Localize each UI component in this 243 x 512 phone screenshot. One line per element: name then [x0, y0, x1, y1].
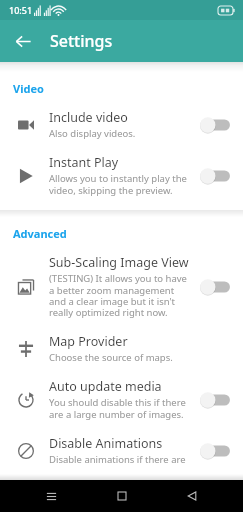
staticText: Auto update media — [49, 378, 162, 395]
button[interactable]: Toggle — [199, 165, 233, 187]
button[interactable]: Recents — [31, 480, 71, 512]
button[interactable]: Toggle — [199, 114, 233, 136]
staticText: You should disable this if there are a l… — [49, 396, 193, 421]
staticText: Sub-Scaling Image View — [49, 254, 189, 271]
staticText: Map Provider — [49, 333, 128, 350]
button[interactable]: Sub-Scaling Image View — [0, 247, 243, 326]
button[interactable]: Toggle — [199, 440, 233, 462]
button[interactable]: Home — [102, 480, 142, 512]
staticText: Also display videos. — [49, 127, 136, 140]
staticText: (TESTING) It allows you to have a better… — [49, 272, 193, 319]
staticText: Choose the source of maps. — [49, 351, 173, 364]
staticText: Allows you to instantly play the video, … — [49, 172, 193, 197]
staticText: Disable animations if there are performa… — [49, 453, 193, 467]
button[interactable]: Back — [172, 480, 212, 512]
button[interactable]: Instant Play — [0, 147, 243, 204]
button[interactable]: Auto update media — [0, 371, 243, 428]
staticText: Include video — [49, 109, 128, 126]
button[interactable]: Map Provider — [0, 326, 243, 371]
staticText: Advanced — [13, 226, 67, 241]
staticText: Settings — [50, 30, 113, 52]
staticText: Disable Animations — [49, 435, 163, 452]
button[interactable]: Back — [6, 24, 40, 58]
staticText: 10:51 — [9, 4, 33, 16]
staticText: Instant Play — [49, 154, 119, 171]
staticText: Video — [13, 81, 44, 96]
button[interactable]: Toggle — [199, 276, 233, 298]
button[interactable]: Toggle — [199, 389, 233, 411]
button[interactable]: Disable Animations — [0, 428, 243, 474]
button[interactable]: Include video — [0, 102, 243, 147]
